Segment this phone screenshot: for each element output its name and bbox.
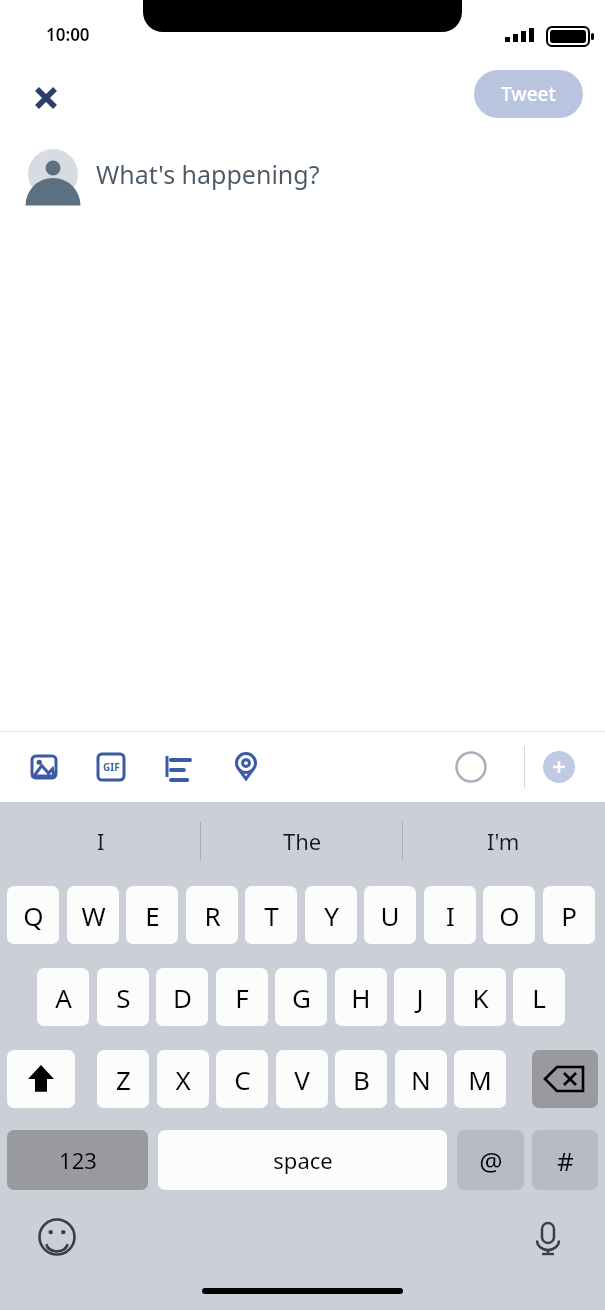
staticText: V [294, 1062, 310, 1097]
staticText: Y [324, 898, 339, 933]
button[interactable]: M [454, 1050, 506, 1108]
button[interactable]: @ [457, 1130, 524, 1190]
staticText: M [468, 1062, 492, 1097]
staticText: R [204, 898, 221, 933]
staticText: S [116, 980, 131, 1015]
button[interactable]: J [394, 968, 446, 1026]
button[interactable]: Add location [222, 743, 270, 791]
button[interactable]: Add poll [155, 743, 203, 791]
button[interactable]: G [275, 968, 327, 1026]
staticText: GIF [103, 760, 120, 774]
button[interactable]: A [37, 968, 89, 1026]
button[interactable]: I'm [403, 802, 604, 880]
staticText: E [145, 898, 160, 933]
button[interactable]: Dictation [521, 1210, 575, 1264]
staticText: H [351, 980, 371, 1015]
staticText: D [173, 980, 192, 1015]
button[interactable]: T [245, 886, 297, 944]
staticText: K [472, 980, 489, 1015]
button[interactable]: N [395, 1050, 447, 1108]
button[interactable]: K [454, 968, 506, 1026]
button[interactable]: Y [305, 886, 357, 944]
button[interactable]: Z [97, 1050, 149, 1108]
staticText: P [561, 898, 577, 933]
staticText: # [557, 1143, 574, 1178]
staticText: U [380, 898, 400, 933]
button[interactable]: Add photo [20, 743, 68, 791]
staticText: T [264, 898, 279, 933]
staticText: F [235, 980, 249, 1015]
staticText: C [234, 1062, 251, 1097]
staticText: G [292, 980, 311, 1015]
button[interactable]: H [335, 968, 387, 1026]
staticText: X [175, 1062, 191, 1097]
button[interactable]: X [157, 1050, 209, 1108]
staticText: O [499, 898, 520, 933]
staticText: I [97, 826, 105, 856]
staticText: 123 [59, 1145, 97, 1175]
staticText: J [416, 980, 424, 1015]
button[interactable]: W [67, 886, 119, 944]
button[interactable]: L [513, 968, 565, 1026]
button[interactable]: Backspace [532, 1050, 598, 1108]
button[interactable]: B [335, 1050, 387, 1108]
staticText: A [55, 980, 72, 1015]
staticText: Tweet [501, 81, 556, 107]
button[interactable]: P [543, 886, 595, 944]
staticText: The [283, 826, 322, 856]
button[interactable]: Character count [455, 751, 487, 783]
button[interactable]: Emoji [30, 1210, 84, 1264]
button[interactable]: R [186, 886, 238, 944]
staticText: 10:00 [46, 23, 90, 46]
button[interactable]: V [276, 1050, 328, 1108]
staticText: @ [479, 1143, 503, 1178]
button[interactable]: Add GIF [87, 743, 135, 791]
button[interactable]: D [156, 968, 208, 1026]
button[interactable]: Shift [7, 1050, 75, 1108]
button[interactable]: Tweet [474, 70, 583, 118]
button[interactable]: The [202, 802, 403, 880]
staticText: B [353, 1062, 370, 1097]
staticText: I [446, 898, 455, 933]
button[interactable]: S [97, 968, 149, 1026]
button[interactable]: U [364, 886, 416, 944]
staticText: What's happening? [96, 157, 320, 191]
staticText: W [81, 898, 106, 933]
button[interactable]: Close [20, 72, 72, 124]
button[interactable]: I [424, 886, 476, 944]
staticText: N [411, 1062, 431, 1097]
button[interactable]: # [532, 1130, 598, 1190]
button[interactable]: 123 [7, 1130, 148, 1190]
staticText: Q [23, 898, 44, 933]
button[interactable]: I [0, 802, 201, 880]
button[interactable]: C [216, 1050, 268, 1108]
staticText: Z [116, 1062, 131, 1097]
staticText: I'm [487, 826, 520, 856]
button[interactable]: O [483, 886, 535, 944]
staticText: L [532, 980, 546, 1015]
button[interactable]: F [216, 968, 268, 1026]
button[interactable]: Add tweet [543, 751, 575, 783]
staticText: space [273, 1145, 333, 1175]
button[interactable]: Q [7, 886, 59, 944]
button[interactable]: space [158, 1130, 447, 1190]
button[interactable]: E [126, 886, 178, 944]
